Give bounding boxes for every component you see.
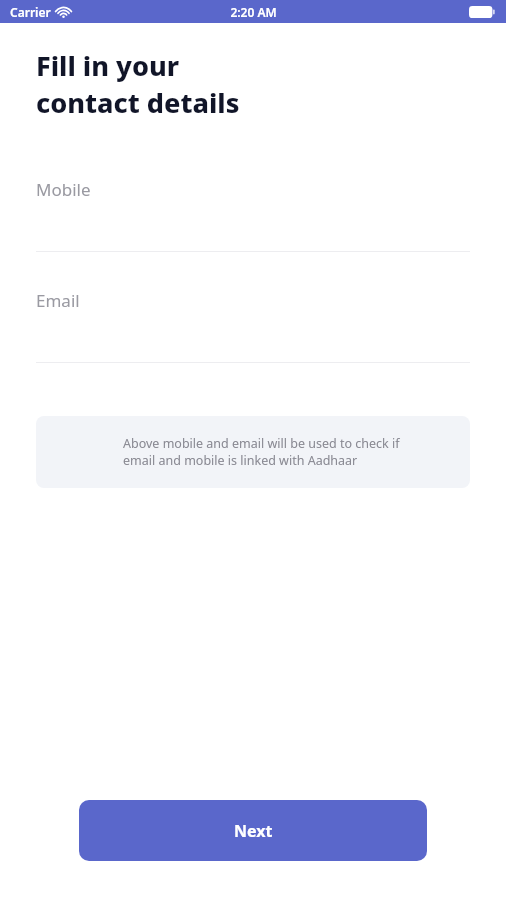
button[interactable]: Next <box>79 800 427 861</box>
staticText: Next <box>234 820 273 842</box>
staticText: Carrier <box>10 4 51 20</box>
staticText: Fill in your <box>36 47 180 84</box>
staticText: email and mobile is linked with Aadhaar <box>123 452 358 469</box>
staticText: Mobile <box>36 178 91 201</box>
staticText: Email <box>36 289 80 312</box>
staticText: Above mobile and email will be used to c… <box>123 435 400 452</box>
staticText: contact details <box>36 84 240 121</box>
staticText: 2:20 AM <box>230 4 277 20</box>
